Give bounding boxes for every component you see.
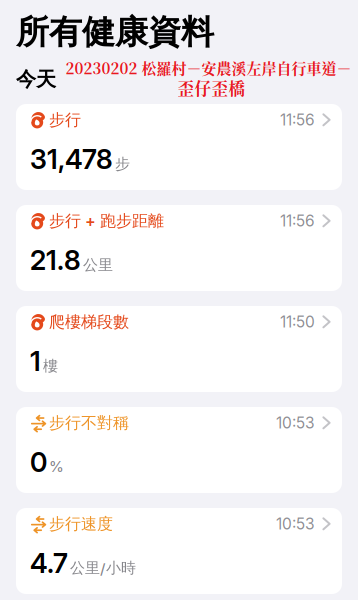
staticText: 步	[115, 155, 130, 173]
staticText: %	[49, 458, 64, 475]
staticText: 今天	[16, 67, 56, 92]
staticText: 樓	[43, 357, 58, 375]
staticText: 11:56	[280, 212, 315, 230]
staticText: 所有健康資料	[16, 12, 214, 52]
staticText: 0	[30, 446, 47, 478]
staticText: 10:53	[276, 515, 315, 533]
staticText: 公里	[83, 256, 113, 274]
button[interactable]: 步行速度	[16, 508, 342, 594]
button[interactable]: 步行不對稱	[16, 407, 342, 493]
staticText: 21.8	[30, 244, 81, 276]
staticText: 爬樓梯段數	[49, 312, 129, 332]
staticText: 歪仔歪橋	[177, 76, 245, 100]
staticText: 31,478	[30, 143, 113, 175]
staticText: 20230202 松羅村－安農溪左岸自行車道－	[65, 57, 351, 79]
staticText: 1	[30, 345, 41, 377]
staticText: 11:50	[280, 313, 315, 331]
button[interactable]: 爬樓梯段數	[16, 306, 342, 392]
staticText: 公里/小時	[70, 559, 136, 577]
staticText: 步行	[49, 110, 81, 130]
button[interactable]: 步行	[16, 104, 342, 190]
staticText: 10:53	[276, 414, 315, 432]
staticText: 步行不對稱	[49, 413, 129, 433]
button[interactable]: 步行 + 跑步距離	[16, 205, 342, 291]
staticText: 步行 + 跑步距離	[49, 211, 164, 231]
staticText: 4.7	[30, 547, 68, 579]
staticText: 步行速度	[49, 514, 113, 534]
staticText: 11:56	[280, 111, 315, 129]
